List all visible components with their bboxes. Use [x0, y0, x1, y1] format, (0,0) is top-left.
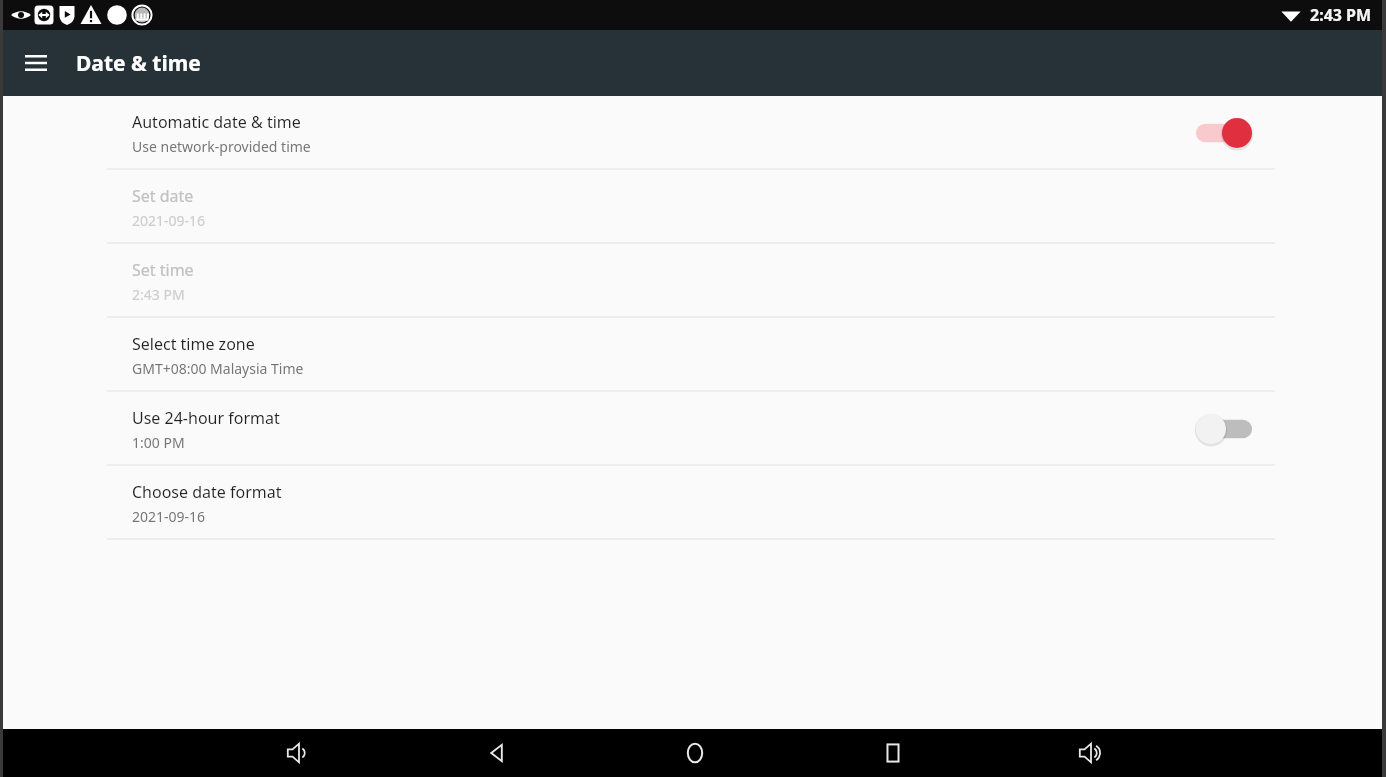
button[interactable]: Set date: [0, 170, 1386, 244]
staticText: GMT+08:00 Malaysia Time: [132, 359, 304, 378]
staticText: Set time: [132, 259, 194, 281]
staticText: Choose date format: [132, 481, 282, 503]
staticText: Set date: [132, 185, 194, 207]
staticText: Use network-provided time: [132, 137, 311, 156]
button[interactable]: Home: [596, 729, 794, 777]
staticText: Use 24-hour format: [132, 407, 280, 429]
button[interactable]: Open navigation menu: [14, 41, 58, 85]
staticText: 2021-09-16: [132, 211, 206, 230]
button[interactable]: Toggle on: [1192, 112, 1256, 154]
button[interactable]: Volume up: [992, 729, 1190, 777]
button[interactable]: Automatic date & time: [0, 96, 1386, 170]
button[interactable]: Volume down: [200, 729, 398, 777]
button[interactable]: Use 24-hour format: [0, 392, 1386, 466]
staticText: Select time zone: [132, 333, 255, 355]
staticText: Date & time: [76, 49, 201, 78]
staticText: 2021-09-16: [132, 507, 206, 526]
button[interactable]: Back: [398, 729, 596, 777]
button[interactable]: Recent apps: [794, 729, 992, 777]
staticText: 1:00 PM: [132, 433, 185, 452]
button[interactable]: Select time zone: [0, 318, 1386, 392]
button[interactable]: Set time: [0, 244, 1386, 318]
button[interactable]: Choose date format: [0, 466, 1386, 540]
staticText: Automatic date & time: [132, 111, 301, 133]
button[interactable]: Toggle off: [1192, 408, 1256, 450]
staticText: 2:43 PM: [132, 285, 185, 304]
staticText: 2:43 PM: [1310, 4, 1372, 26]
